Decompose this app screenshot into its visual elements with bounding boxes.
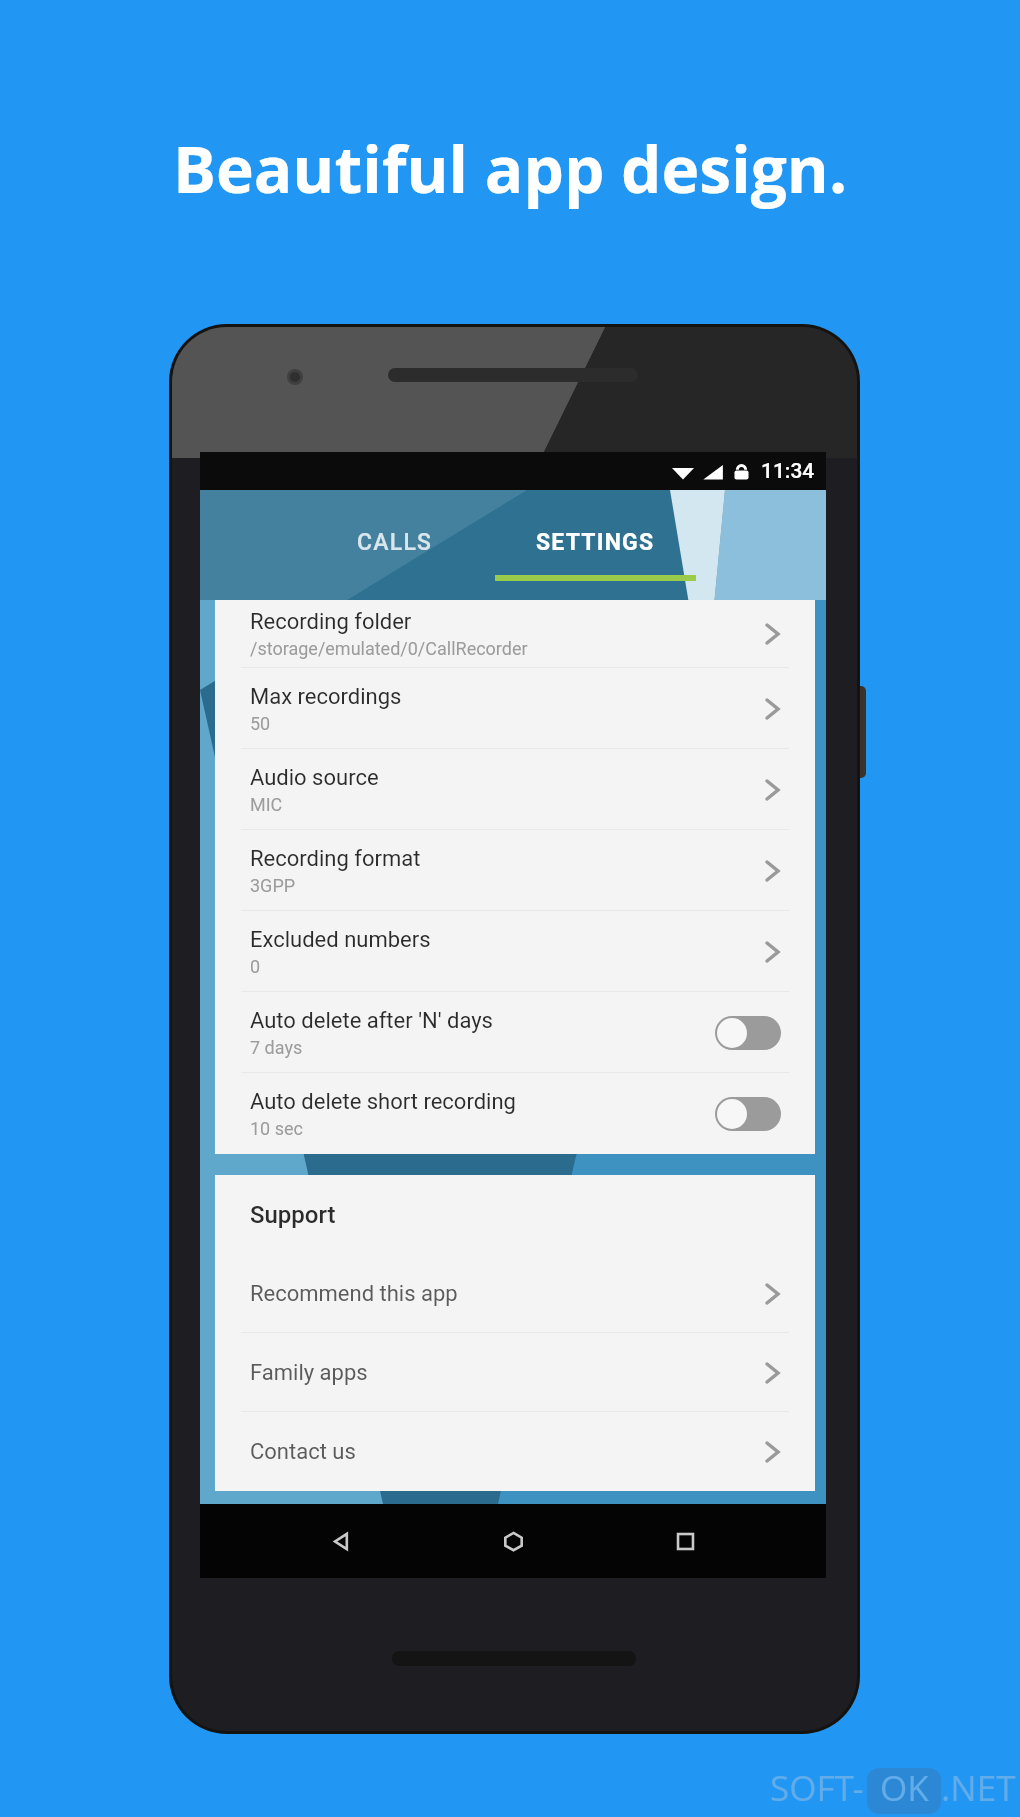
staticText: Excluded numbers bbox=[250, 927, 431, 953]
staticText: MIC bbox=[250, 794, 283, 815]
button[interactable]: Back bbox=[310, 1510, 372, 1572]
staticText: SETTINGS bbox=[536, 529, 655, 556]
staticText: SOFT- bbox=[770, 1764, 864, 1812]
staticText: Beautiful app design. bbox=[0, 125, 1020, 212]
button[interactable]: Auto delete after 'N' days bbox=[215, 992, 815, 1073]
button[interactable]: Contact us bbox=[215, 1412, 815, 1491]
button[interactable]: SETTINGS bbox=[495, 490, 696, 594]
staticText: 3GPP bbox=[250, 875, 296, 896]
staticText: Support bbox=[250, 1201, 336, 1229]
staticText: Recording format bbox=[250, 846, 421, 872]
staticText: .NET bbox=[941, 1764, 1016, 1812]
button[interactable]: Auto delete short recording bbox=[215, 1073, 815, 1154]
button[interactable]: Recent apps bbox=[654, 1510, 716, 1572]
button[interactable]: Family apps bbox=[215, 1333, 815, 1412]
button[interactable]: Max recordings bbox=[215, 668, 815, 749]
button[interactable]: Recommend this app bbox=[215, 1254, 815, 1333]
button[interactable]: Toggle Auto delete short recording bbox=[715, 1097, 781, 1131]
staticText: 50 bbox=[250, 713, 271, 734]
staticText: 7 days bbox=[250, 1037, 303, 1058]
staticText: Auto delete after 'N' days bbox=[250, 1008, 493, 1034]
button[interactable]: Recording folder bbox=[215, 600, 815, 668]
button[interactable]: Toggle Auto delete after 'N' days bbox=[715, 1016, 781, 1050]
button[interactable]: Home bbox=[482, 1510, 544, 1572]
staticText: 11:34 bbox=[761, 459, 815, 484]
button[interactable]: Recording format bbox=[215, 830, 815, 911]
staticText: Auto delete short recording bbox=[250, 1089, 516, 1115]
staticText: Family apps bbox=[250, 1360, 368, 1386]
button[interactable]: Audio source bbox=[215, 749, 815, 830]
staticText: Recommend this app bbox=[250, 1281, 458, 1307]
button[interactable]: Excluded numbers bbox=[215, 911, 815, 992]
staticText: Audio source bbox=[250, 765, 379, 791]
staticText: OK bbox=[880, 1764, 929, 1812]
button[interactable]: CALLS bbox=[294, 490, 495, 594]
staticText: 10 sec bbox=[250, 1118, 303, 1139]
staticText: Max recordings bbox=[250, 684, 402, 710]
staticText: CALLS bbox=[357, 529, 433, 556]
staticText: 0 bbox=[250, 956, 261, 977]
staticText: /storage/emulated/0/CallRecorder bbox=[250, 638, 528, 659]
staticText: Recording folder bbox=[250, 609, 412, 635]
staticText: Contact us bbox=[250, 1439, 356, 1465]
